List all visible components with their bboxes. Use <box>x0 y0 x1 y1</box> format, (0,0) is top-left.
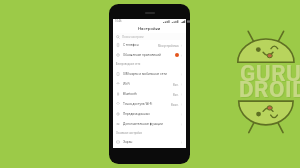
button[interactable]: Дополнительные функции <box>113 119 186 129</box>
button[interactable]: SIM-карты и мобильные сети <box>113 69 186 79</box>
button[interactable]: С телефон <box>113 40 186 50</box>
staticText: Точка доступа Wi-Fi <box>123 102 153 106</box>
staticText: GURU <box>241 61 300 87</box>
staticText: GURU <box>240 60 300 86</box>
staticText: Поиск настроек <box>122 35 144 38</box>
button[interactable]: Обновление приложений <box>113 50 186 60</box>
staticText: Передача данных <box>123 112 150 116</box>
staticText: Вкл. <box>173 83 179 86</box>
staticText: Дополнительные функции <box>123 122 163 126</box>
staticText: Обновление приложений <box>123 53 161 57</box>
staticText: Вкл. <box>173 93 179 96</box>
staticText: 10:46 <box>115 20 122 23</box>
staticText: Выкл. <box>171 103 179 106</box>
staticText: Беспроводные сети <box>116 63 141 66</box>
staticText: С телефон <box>123 43 139 47</box>
staticText: Настройки <box>138 26 161 31</box>
staticText: DROID <box>239 76 300 102</box>
staticText: Мои устройства <box>158 44 179 47</box>
staticText: Экран <box>123 140 133 144</box>
button[interactable]: Точка доступа Wi-Fi <box>113 99 186 109</box>
button[interactable]: Wi-Fi <box>113 79 186 89</box>
staticText: Bluetooth <box>123 92 137 96</box>
button[interactable]: Bluetooth <box>113 89 186 99</box>
staticText: Wi-Fi <box>123 82 131 86</box>
staticText: Основные настройки <box>116 132 142 135</box>
staticText: SIM-карты и мобильные сети <box>123 72 167 76</box>
staticText: DROID <box>240 77 300 103</box>
button[interactable]: Экран <box>113 137 186 147</box>
button[interactable]: Передача данных <box>113 109 186 119</box>
